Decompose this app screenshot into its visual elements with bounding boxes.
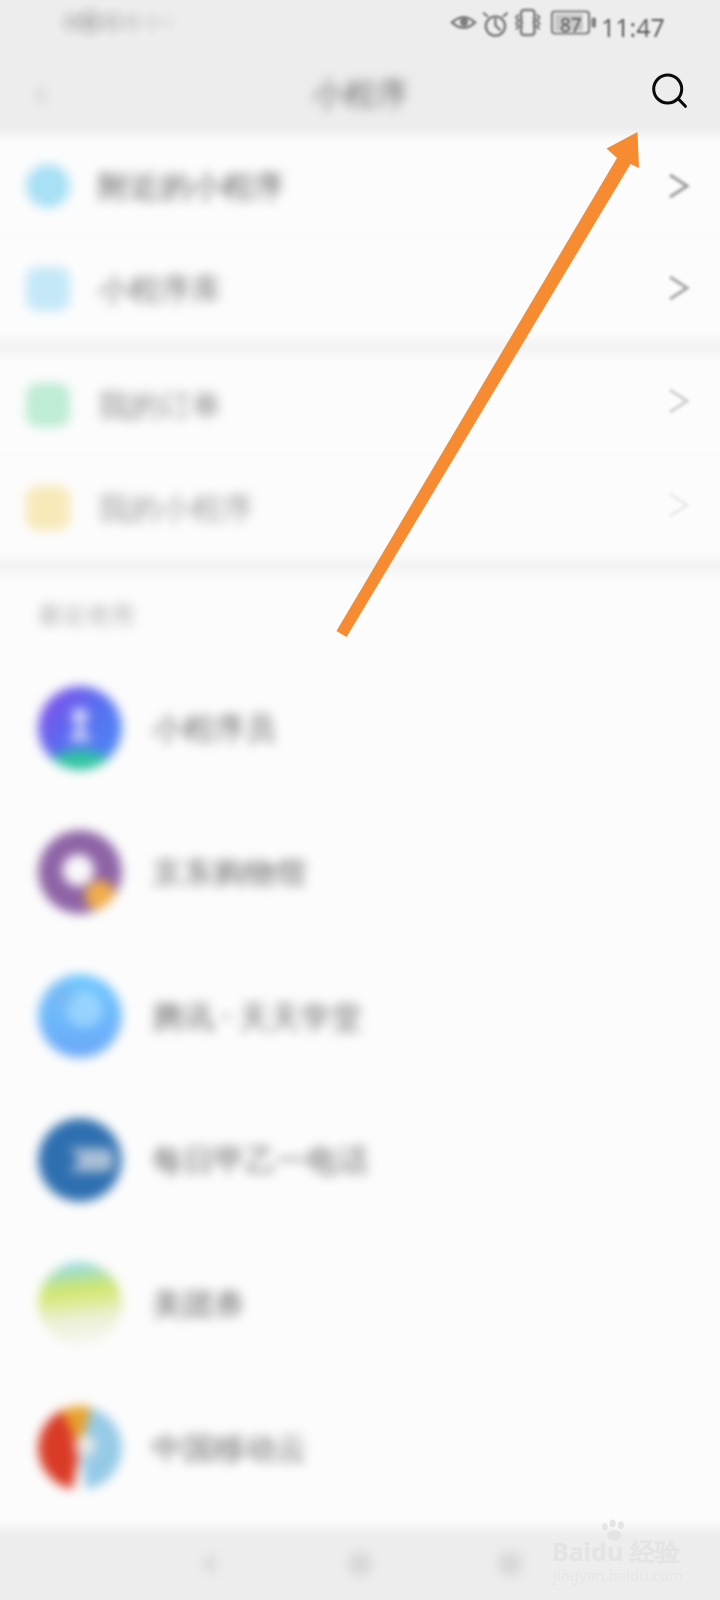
staticText: 我的小程序 <box>98 489 253 528</box>
button[interactable]: Search <box>635 57 701 123</box>
staticText: 小程序库 <box>98 270 222 309</box>
button[interactable]: 腾讯 · 天天学堂 <box>0 944 720 1088</box>
staticText: 11:47 <box>601 10 665 44</box>
staticText: 87 <box>560 12 582 38</box>
staticText: 小程序员 <box>152 709 276 748</box>
button[interactable]: 中国移动云 <box>0 1376 720 1520</box>
staticText: 最近使用 <box>38 600 134 630</box>
staticText: 腾讯 · 天天学堂 <box>152 995 363 1037</box>
button[interactable]: 我的小程序 <box>0 457 720 559</box>
button[interactable]: 小程序库 <box>0 238 720 340</box>
staticText: Baidu 经验 <box>552 1534 680 1568</box>
button[interactable]: Recents <box>462 1528 558 1600</box>
staticText: 京东购物馆 <box>152 853 307 892</box>
button[interactable]: 京东购物馆 <box>0 800 720 944</box>
button[interactable]: 我的订单 <box>0 354 720 456</box>
staticText: 中国移动云 <box>152 1429 307 1468</box>
button[interactable]: 美团券 <box>0 1232 720 1376</box>
staticText: 我的订单 <box>98 386 222 425</box>
staticText: 小程序 <box>312 74 408 114</box>
button[interactable]: 每日甲乙一电话 <box>0 1088 720 1232</box>
staticText: 美团券 <box>152 1285 245 1324</box>
button[interactable]: Home <box>312 1528 408 1600</box>
button[interactable]: 附近的小程序 <box>0 135 720 237</box>
button[interactable]: 小程序员 <box>0 656 720 800</box>
staticText: 每日甲乙一电话 <box>152 1141 369 1180</box>
staticText: 附近的小程序 <box>98 167 284 206</box>
